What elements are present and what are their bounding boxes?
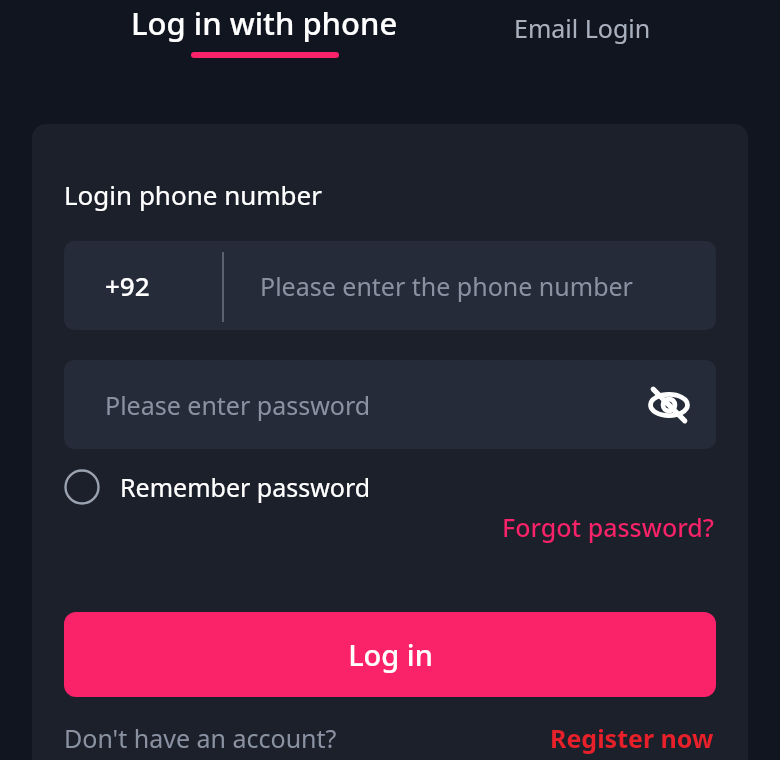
staticText: Forgot password? xyxy=(502,510,714,544)
button[interactable]: Log in with phone xyxy=(129,2,400,58)
staticText: Email Login xyxy=(514,11,651,45)
staticText: Please enter password xyxy=(105,388,371,422)
button[interactable]: Show password xyxy=(642,378,696,432)
staticText: Log in xyxy=(348,635,433,674)
staticText: Login phone number xyxy=(64,177,322,212)
staticText: +92 xyxy=(105,268,150,303)
staticText: Log in with phone xyxy=(131,2,398,44)
button[interactable]: Register now xyxy=(548,721,716,755)
button[interactable]: Please enter password xyxy=(64,360,716,449)
button[interactable]: Log in xyxy=(64,612,716,697)
button[interactable]: Forgot password? xyxy=(500,507,716,547)
staticText: Please enter the phone number xyxy=(260,269,633,303)
staticText: Don't have an account? xyxy=(64,721,337,755)
button[interactable]: Don't have an account? xyxy=(64,721,337,755)
button[interactable]: Remember password xyxy=(64,465,377,509)
button[interactable]: Email Login xyxy=(512,11,653,45)
staticText: Remember password xyxy=(120,470,371,504)
staticText: Register now xyxy=(550,721,714,755)
button[interactable]: +92 xyxy=(64,241,716,330)
